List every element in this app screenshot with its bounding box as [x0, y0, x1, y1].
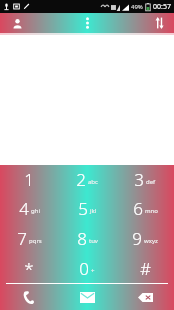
button[interactable]: 2 — [58, 165, 116, 194]
staticText: 5 — [78, 197, 88, 220]
button[interactable]: 4 — [0, 194, 58, 223]
staticText: 7 — [17, 227, 27, 250]
staticText: * — [24, 257, 34, 280]
button[interactable]: 6 — [116, 194, 174, 223]
staticText: + — [91, 267, 95, 275]
staticText: 1 — [24, 168, 34, 191]
button[interactable]: 7 — [0, 223, 58, 253]
button[interactable]: 3 — [116, 165, 174, 194]
button[interactable]: 8 — [58, 223, 116, 253]
staticText: mno — [145, 207, 158, 215]
button[interactable]: Message — [58, 284, 116, 310]
button[interactable]: Swap — [144, 13, 174, 33]
staticText: tuv — [89, 237, 98, 245]
staticText: 9 — [132, 227, 142, 250]
staticText: def — [146, 178, 156, 186]
staticText: jkl — [90, 207, 97, 215]
button[interactable]: 9 — [116, 223, 174, 253]
staticText: wxyz — [144, 237, 158, 245]
staticText: 0 — [79, 257, 89, 280]
button[interactable]: Backspace — [116, 284, 174, 310]
staticText: # — [140, 257, 151, 280]
staticText: 00:57 — [153, 2, 171, 12]
staticText: 8 — [77, 227, 87, 250]
staticText: 49% — [131, 3, 143, 11]
button[interactable]: More options — [74, 13, 100, 33]
button[interactable]: 5 — [58, 194, 116, 223]
staticText: pqrs — [29, 237, 42, 245]
button[interactable]: 0 — [58, 253, 116, 283]
staticText: 4 — [19, 197, 29, 220]
staticText: ghi — [31, 207, 40, 215]
button[interactable]: Call — [0, 284, 58, 310]
button[interactable]: * — [0, 253, 58, 283]
button[interactable]: 1 — [0, 165, 58, 194]
staticText: abc — [88, 178, 98, 186]
staticText: 3 — [134, 168, 144, 191]
button[interactable]: # — [116, 253, 174, 283]
staticText: 2 — [76, 168, 86, 191]
staticText: 6 — [133, 197, 143, 220]
button[interactable]: Contacts — [0, 13, 34, 33]
